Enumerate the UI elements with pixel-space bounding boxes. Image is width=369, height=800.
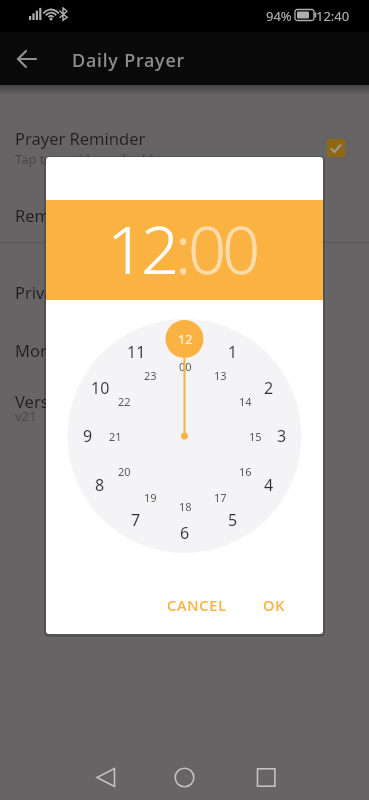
- staticText: CANCEL: [167, 595, 227, 615]
- button[interactable]: [0, 324, 369, 378]
- staticText: 6: [180, 522, 190, 544]
- staticText: 12: [178, 331, 193, 348]
- staticText: 1: [228, 341, 238, 363]
- staticText: Version: [15, 390, 74, 412]
- staticText: 12: [107, 202, 175, 293]
- staticText: 00: [188, 202, 256, 293]
- staticText: 11: [127, 341, 146, 363]
- staticText: 14: [239, 394, 252, 409]
- staticText: 19: [144, 490, 157, 505]
- staticText: 12:40: [316, 7, 350, 25]
- staticText: 00: [179, 359, 192, 374]
- staticText: 20: [118, 464, 131, 479]
- staticText: 15: [249, 429, 262, 444]
- staticText: Daily Prayer: [72, 48, 185, 73]
- staticText: 10: [91, 377, 110, 399]
- staticText: 2: [264, 377, 274, 399]
- staticText: :: [175, 202, 188, 293]
- button[interactable]: [327, 139, 345, 157]
- staticText: 22: [118, 394, 131, 409]
- staticText: 4: [264, 474, 274, 496]
- button[interactable]: [0, 266, 369, 320]
- staticText: 5: [228, 509, 238, 531]
- staticText: More apps: [15, 339, 98, 361]
- staticText: v21: [15, 407, 37, 425]
- button[interactable]: [85, 765, 129, 800]
- button[interactable]: CANCEL: [137, 581, 257, 629]
- staticText: 16: [239, 464, 252, 479]
- button[interactable]: [0, 380, 369, 436]
- staticText: Reminder time: [15, 204, 130, 226]
- staticText: 94%: [266, 7, 292, 25]
- staticText: 8: [95, 474, 105, 496]
- button[interactable]: [0, 188, 369, 242]
- staticText: 13: [214, 368, 227, 383]
- staticText: OK: [263, 595, 286, 615]
- button[interactable]: [241, 765, 285, 800]
- button[interactable]: [10, 42, 44, 76]
- staticText: 18: [179, 499, 192, 514]
- staticText: Privacy Policy: [15, 281, 120, 303]
- staticText: 3: [277, 425, 287, 447]
- staticText: Tap to enable or disable: [15, 150, 161, 168]
- staticText: 21: [109, 429, 122, 444]
- button[interactable]: OK: [239, 581, 309, 629]
- staticText: 12: [176, 328, 195, 350]
- staticText: 17: [214, 490, 227, 505]
- button[interactable]: [163, 765, 207, 800]
- staticText: Prayer Reminder: [15, 127, 146, 149]
- staticText: 7: [131, 509, 141, 531]
- staticText: 23: [144, 368, 157, 383]
- staticText: 9: [83, 425, 93, 447]
- button[interactable]: [0, 110, 369, 186]
